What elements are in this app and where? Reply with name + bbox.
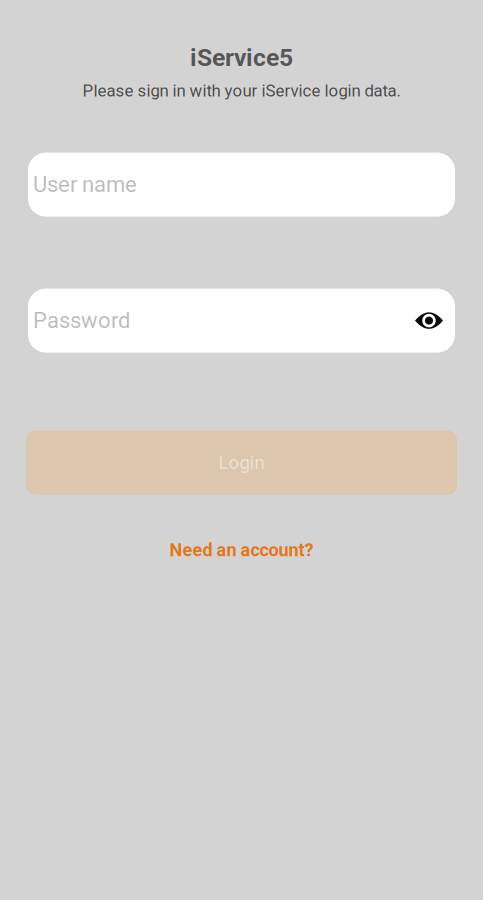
staticText: Login — [218, 452, 264, 474]
staticText: User name — [33, 172, 137, 197]
staticText: iService5 — [190, 43, 293, 72]
staticText: Please sign in with your iService login … — [82, 81, 400, 101]
button[interactable]: Show password — [403, 289, 455, 353]
staticText: Need an account? — [169, 540, 313, 561]
button[interactable]: Need an account? — [157, 532, 325, 569]
button[interactable]: Login — [26, 431, 457, 495]
staticText: Password — [33, 308, 130, 333]
